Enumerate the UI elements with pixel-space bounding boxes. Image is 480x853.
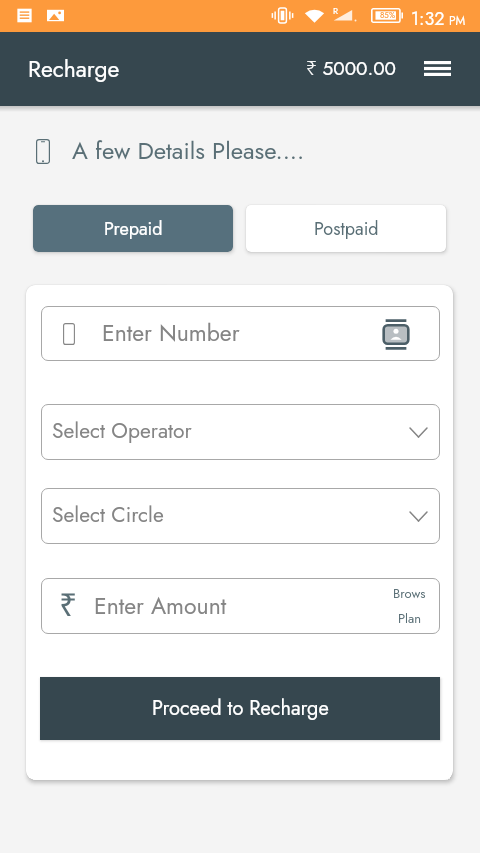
staticText: Plan: [398, 609, 422, 628]
button[interactable]: Pick contact: [377, 314, 415, 354]
staticText: Select Operator: [52, 416, 192, 446]
button[interactable]: ₹: [41, 578, 440, 634]
button[interactable]: Select Circle: [41, 488, 440, 544]
staticText: Prepaid: [104, 216, 163, 242]
staticText: R: [333, 4, 339, 17]
staticText: 1:32: [411, 6, 445, 32]
button[interactable]: Prepaid: [33, 205, 233, 252]
staticText: Enter Number: [102, 316, 240, 349]
staticText: ₹: [59, 582, 78, 626]
staticText: Postpaid: [314, 216, 379, 242]
staticText: Recharge: [28, 52, 120, 85]
staticText: Enter Amount: [94, 589, 227, 622]
button[interactable]: Menu: [412, 43, 462, 93]
staticText: PM: [449, 12, 466, 29]
staticText: Brows: [393, 584, 426, 603]
button[interactable]: Select Operator: [41, 404, 440, 460]
button[interactable]: Postpaid: [246, 205, 446, 252]
staticText: A few Details Please....: [72, 133, 305, 168]
staticText: ₹ 5000.00: [306, 55, 396, 82]
button[interactable]: Enter Number: [41, 306, 440, 361]
button[interactable]: Proceed to Recharge: [40, 677, 440, 740]
staticText: Select Circle: [52, 500, 164, 530]
staticText: 85%: [380, 9, 395, 21]
staticText: Proceed to Recharge: [152, 694, 329, 723]
